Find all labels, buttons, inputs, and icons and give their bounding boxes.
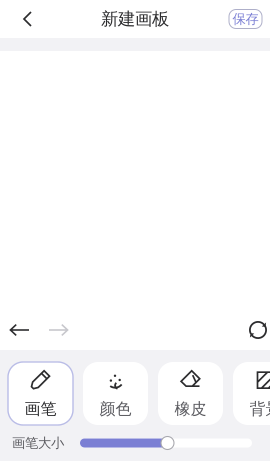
staticText: 橡皮 <box>174 399 206 419</box>
staticText: 保存 <box>232 11 258 27</box>
staticText: 颜色 <box>99 399 131 419</box>
button[interactable]: Undo <box>0 310 39 350</box>
button[interactable]: Clear canvas <box>246 310 270 350</box>
staticText: 画笔大小 <box>12 435 64 451</box>
button[interactable]: Back <box>0 0 47 38</box>
button[interactable]: Redo <box>39 310 78 350</box>
staticText: 背景 <box>249 399 270 419</box>
staticText: 新建画板 <box>101 8 169 30</box>
button[interactable]: 保存 <box>229 9 262 28</box>
button[interactable]: 颜色 <box>83 362 148 425</box>
button[interactable]: 背景 <box>233 362 270 425</box>
staticText: 画笔 <box>24 399 56 419</box>
button[interactable]: 画笔 <box>8 362 73 425</box>
button[interactable]: 橡皮 <box>158 362 223 425</box>
